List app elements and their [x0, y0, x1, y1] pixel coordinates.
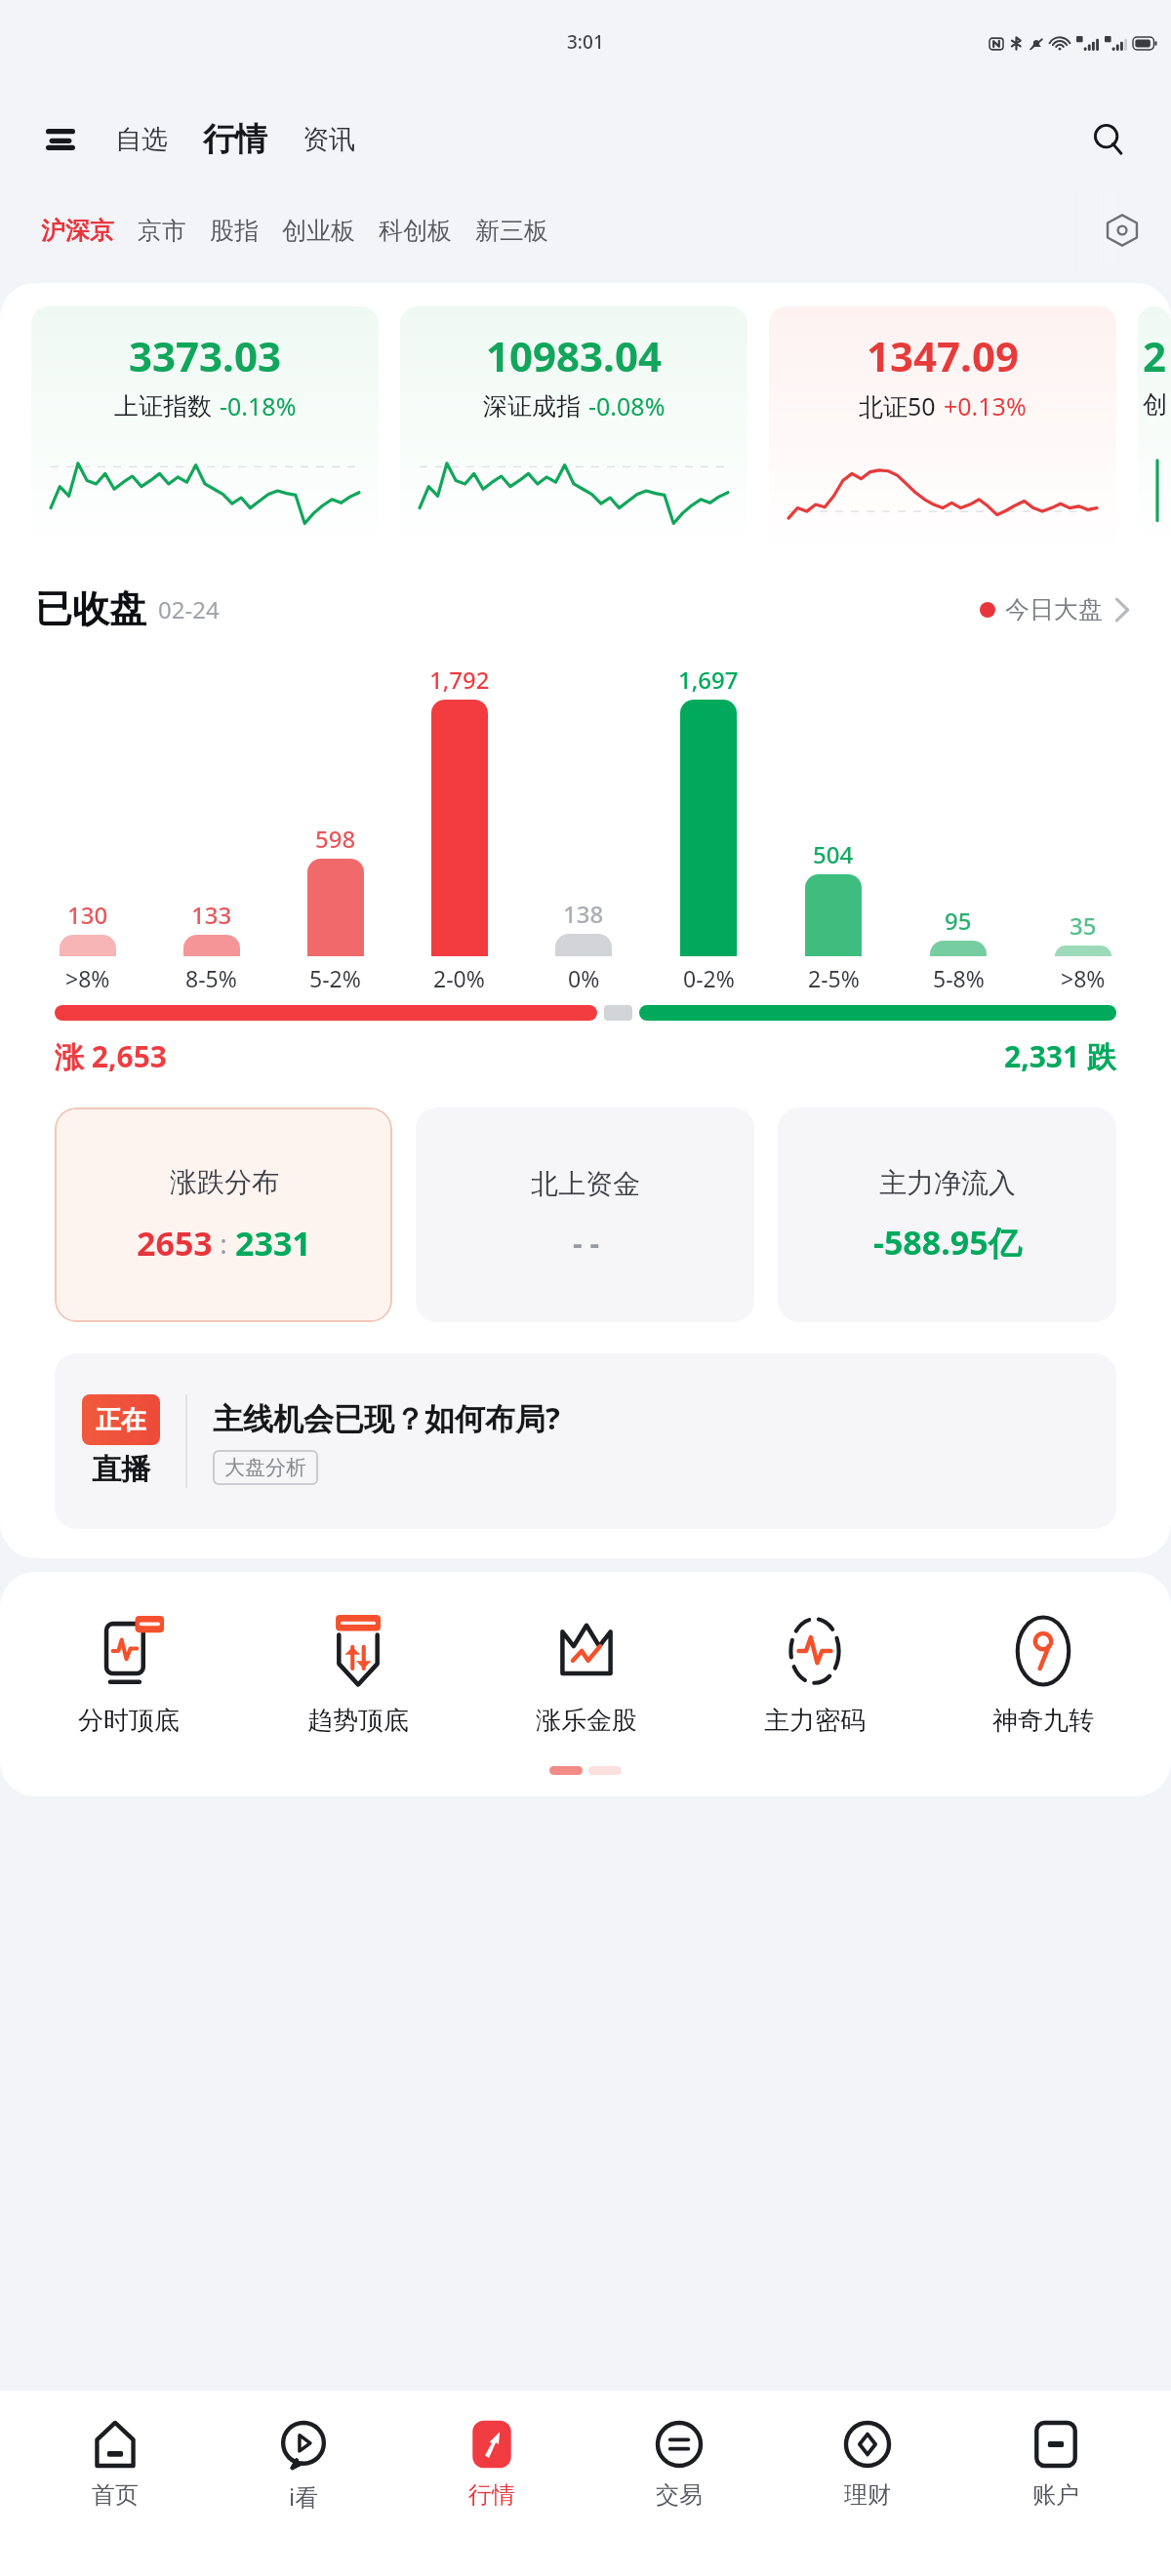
- staticText: 598: [315, 823, 356, 855]
- staticText: 新三板: [475, 216, 548, 246]
- button[interactable]: 1,697: [646, 664, 771, 993]
- button[interactable]: 首页: [42, 2412, 188, 2514]
- staticText: 0-2%: [683, 963, 735, 993]
- button[interactable]: 涨乐金股: [472, 1607, 701, 1741]
- button[interactable]: 504: [771, 664, 896, 993]
- button[interactable]: 95: [896, 664, 1021, 993]
- staticText: -0.18%: [220, 389, 297, 423]
- staticText: 京市: [138, 216, 186, 246]
- staticText: 涨 2,653: [55, 1036, 167, 1076]
- staticText: 涨乐金股: [536, 1705, 637, 1737]
- staticText: 创: [1143, 389, 1167, 420]
- staticText: 0%: [568, 963, 600, 993]
- button[interactable]: 2: [1138, 306, 1171, 552]
- staticText: 02-24: [158, 593, 220, 625]
- staticText: 交易: [656, 2480, 703, 2510]
- staticText: 5-8%: [933, 963, 985, 993]
- button[interactable]: 主力净流入: [778, 1107, 1116, 1322]
- button[interactable]: 账户: [983, 2412, 1129, 2514]
- staticText: - -: [573, 1223, 599, 1263]
- button[interactable]: Menu: [35, 114, 86, 165]
- staticText: 主力净流入: [879, 1166, 1016, 1200]
- button[interactable]: 35: [1021, 664, 1146, 993]
- button[interactable]: 1347.09: [769, 306, 1116, 552]
- staticText: 3:01: [567, 29, 604, 55]
- staticText: 3373.03: [129, 328, 281, 383]
- staticText: -0.08%: [588, 389, 666, 423]
- staticText: 2,331 跌: [1004, 1036, 1116, 1076]
- staticText: 2331: [235, 1221, 311, 1266]
- button[interactable]: 涨跌分布: [55, 1107, 392, 1322]
- button[interactable]: Search: [1081, 112, 1136, 167]
- staticText: 沪深京: [41, 216, 114, 246]
- staticText: 股指: [210, 216, 259, 246]
- staticText: 504: [813, 838, 854, 870]
- staticText: 主线机会已现？如何布局?: [213, 1397, 560, 1438]
- staticText: 分时顶底: [78, 1705, 180, 1737]
- button[interactable]: i看: [230, 2412, 377, 2516]
- staticText: 2: [1143, 328, 1167, 383]
- button[interactable]: 理财: [794, 2412, 941, 2514]
- button[interactable]: 10983.04: [400, 306, 747, 552]
- staticText: 直播: [92, 1451, 150, 1488]
- staticText: 涨跌分布: [170, 1165, 279, 1199]
- staticText: 主力密码: [764, 1705, 866, 1737]
- button[interactable]: 3373.03: [31, 306, 379, 552]
- staticText: 5-2%: [309, 963, 361, 993]
- button[interactable]: 1,792: [397, 664, 521, 993]
- button[interactable]: 新三板: [464, 208, 560, 254]
- staticText: 35: [1070, 909, 1097, 942]
- staticText: 138: [563, 898, 604, 930]
- staticText: 深证成指: [483, 391, 581, 422]
- button[interactable]: 133: [149, 664, 273, 993]
- staticText: 理财: [844, 2480, 891, 2510]
- button[interactable]: 北上资金: [416, 1107, 754, 1322]
- staticText: 上证指数: [114, 391, 212, 422]
- staticText: 1,697: [678, 664, 739, 696]
- staticText: 资讯: [303, 123, 355, 156]
- staticText: 133: [191, 899, 232, 931]
- button[interactable]: 资讯: [293, 117, 365, 162]
- button[interactable]: 行情: [419, 2412, 565, 2514]
- button[interactable]: 神奇九转: [929, 1607, 1157, 1741]
- staticText: 账户: [1032, 2480, 1079, 2510]
- staticText: 8-5%: [185, 963, 237, 993]
- staticText: 北上资金: [531, 1167, 640, 1201]
- button[interactable]: 科创板: [367, 208, 464, 254]
- staticText: 神奇九转: [992, 1705, 1094, 1737]
- button[interactable]: 趋势顶底: [243, 1607, 472, 1741]
- button[interactable]: 分时顶底: [14, 1607, 243, 1741]
- staticText: 行情: [203, 119, 267, 160]
- button[interactable]: 130: [25, 664, 149, 993]
- staticText: 1347.09: [867, 328, 1019, 383]
- button[interactable]: Tab settings: [1097, 205, 1148, 256]
- staticText: 趋势顶底: [307, 1705, 409, 1737]
- staticText: 行情: [468, 2480, 515, 2510]
- button[interactable]: 今日大盘: [974, 586, 1136, 632]
- staticText: 正在: [96, 1404, 146, 1436]
- button[interactable]: 京市: [126, 208, 198, 254]
- button[interactable]: 正在: [55, 1353, 1116, 1529]
- staticText: 130: [67, 899, 108, 931]
- staticText: 95: [945, 905, 972, 937]
- staticText: +0.13%: [944, 389, 1027, 423]
- staticText: :: [213, 1225, 235, 1262]
- staticText: 大盘分析: [224, 1455, 306, 1480]
- staticText: 2-0%: [433, 963, 485, 993]
- button[interactable]: 598: [273, 664, 397, 993]
- staticText: 今日大盘: [1005, 594, 1103, 624]
- button[interactable]: 沪深京: [29, 208, 126, 254]
- staticText: >8%: [1061, 963, 1106, 993]
- staticText: 科创板: [379, 216, 452, 246]
- button[interactable]: 创业板: [270, 208, 367, 254]
- staticText: i看: [289, 2480, 319, 2513]
- button[interactable]: 行情: [195, 117, 275, 162]
- staticText: 2653: [137, 1221, 213, 1266]
- staticText: >8%: [65, 963, 110, 993]
- staticText: 10983.04: [486, 328, 662, 383]
- button[interactable]: 主力密码: [701, 1607, 929, 1741]
- button[interactable]: 交易: [606, 2412, 752, 2514]
- button[interactable]: 自选: [105, 117, 178, 162]
- button[interactable]: 138: [521, 664, 646, 993]
- button[interactable]: 股指: [198, 208, 270, 254]
